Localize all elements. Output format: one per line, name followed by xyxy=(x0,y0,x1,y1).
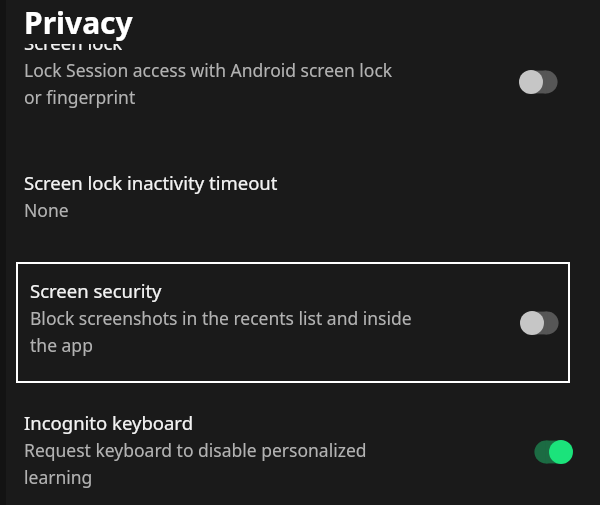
button[interactable]: Incognito keyboard toggle xyxy=(521,430,579,474)
staticText: Request keyboard to disable personalized… xyxy=(24,438,367,489)
staticText: Screen lock inactivity timeout xyxy=(24,170,278,195)
staticText: Screen lock xyxy=(24,44,123,55)
staticText: Incognito keyboard xyxy=(24,410,194,435)
button[interactable]: Screen security toggle xyxy=(517,301,569,345)
button[interactable]: Screen lock inactivity timeout xyxy=(6,166,600,228)
button[interactable]: Screen security xyxy=(16,262,570,383)
staticText: Block screenshots in the recents list an… xyxy=(30,306,412,357)
staticText: Privacy xyxy=(24,2,133,43)
staticText: None xyxy=(24,198,69,222)
button[interactable]: Screen lock xyxy=(6,44,600,124)
staticText: Lock Session access with Android screen … xyxy=(24,58,393,109)
button[interactable]: Screen lock toggle xyxy=(515,60,569,104)
staticText: Screen security xyxy=(30,278,162,303)
button[interactable]: Incognito keyboard xyxy=(6,404,600,504)
